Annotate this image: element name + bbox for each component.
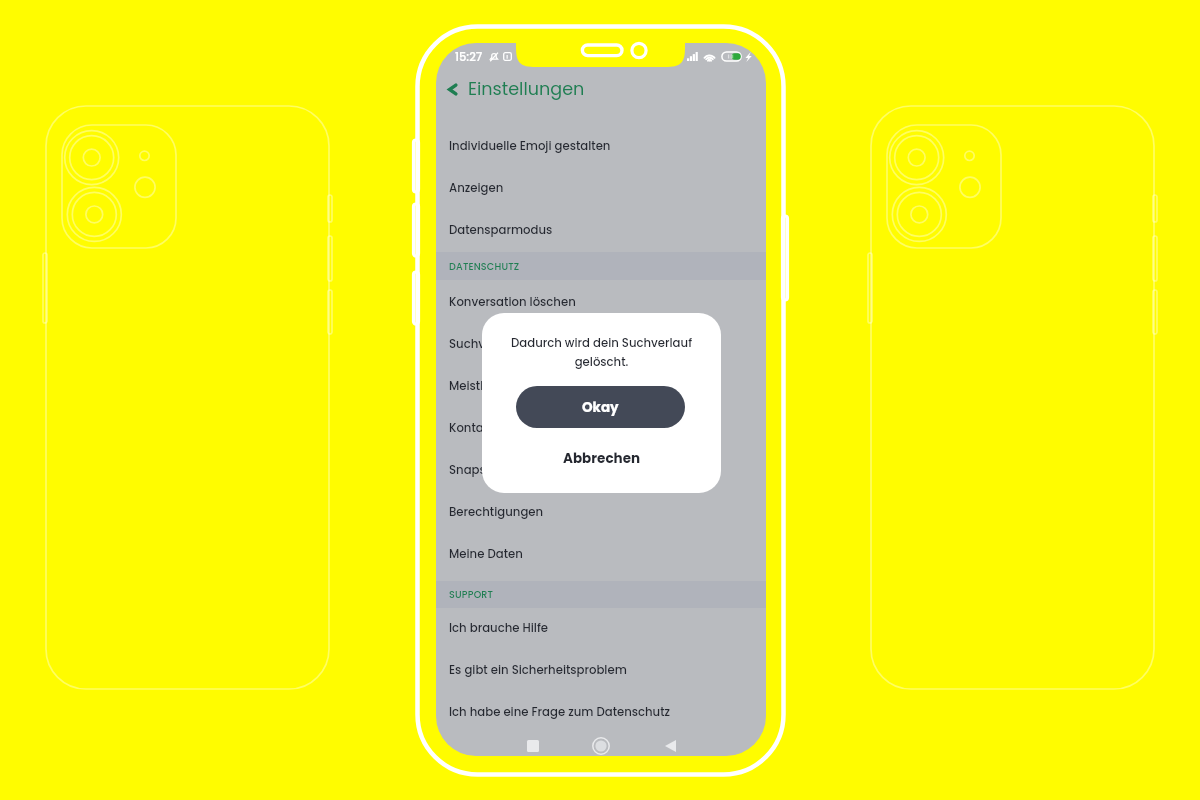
staticText: Dadurch wird dein Suchverlauf gelöscht. bbox=[494, 335, 709, 370]
button[interactable]: Datensparmodus bbox=[436, 209, 766, 251]
button[interactable]: Anzeigen bbox=[436, 167, 766, 209]
staticText: Einstellungen bbox=[468, 77, 585, 102]
button[interactable]: Abbrechen bbox=[482, 441, 721, 475]
staticText: Kontakte synchronisieren bbox=[449, 420, 599, 436]
button[interactable]: Suchverlauf löschen bbox=[436, 323, 766, 365]
button[interactable]: Snapshots löschen bbox=[436, 449, 766, 491]
staticText: SUPPORT bbox=[449, 588, 494, 601]
other: Back bbox=[446, 83, 459, 96]
staticText: Snapshots löschen bbox=[449, 462, 561, 478]
staticText: Ich brauche Hilfe bbox=[449, 620, 548, 636]
staticText: Abbrechen bbox=[563, 449, 641, 468]
button[interactable]: Back bbox=[656, 733, 684, 756]
button[interactable]: Meine Daten bbox=[436, 533, 766, 575]
staticText: Ich habe eine Frage zum Datenschutz bbox=[449, 704, 671, 720]
staticText: Berechtigungen bbox=[449, 504, 544, 520]
staticText: Individuelle Emoji gestalten bbox=[449, 138, 611, 154]
staticText: Konversation löschen bbox=[449, 294, 576, 310]
button[interactable]: Ich brauche Hilfe bbox=[436, 607, 766, 649]
button[interactable]: Home bbox=[587, 733, 615, 756]
staticText: Anzeigen bbox=[449, 180, 504, 196]
staticText: DATENSCHUTZ bbox=[449, 260, 520, 273]
button[interactable]: Es gibt ein Sicherheitsproblem bbox=[436, 649, 766, 691]
button[interactable]: Recent apps bbox=[519, 733, 547, 756]
button[interactable]: Okay bbox=[516, 386, 685, 428]
button[interactable]: Konversation löschen bbox=[436, 281, 766, 323]
button[interactable]: Individuelle Emoji gestalten bbox=[436, 125, 766, 167]
button[interactable]: Ich habe eine Frage zum Datenschutz bbox=[436, 691, 766, 733]
staticText: 15:27 bbox=[455, 49, 483, 65]
button[interactable]: Kontakte synchronisieren bbox=[436, 407, 766, 449]
staticText: Meistbenutzte löschen bbox=[449, 378, 582, 394]
staticText: Es gibt ein Sicherheitsproblem bbox=[449, 662, 627, 678]
button[interactable]: Meistbenutzte löschen bbox=[436, 365, 766, 407]
staticText: Suchverlauf löschen bbox=[449, 336, 569, 352]
button[interactable]: Back bbox=[446, 74, 585, 104]
staticText: Okay bbox=[582, 398, 619, 417]
staticText: Datensparmodus bbox=[449, 222, 553, 238]
button[interactable]: Berechtigungen bbox=[436, 491, 766, 533]
staticText: Meine Daten bbox=[449, 546, 523, 562]
